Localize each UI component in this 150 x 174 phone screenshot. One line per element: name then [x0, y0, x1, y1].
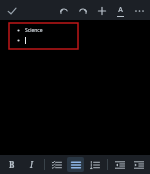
- button[interactable]: Text formatting: [111, 1, 130, 20]
- button[interactable]: Numbered list: [86, 157, 103, 172]
- staticText: A: [118, 5, 123, 15]
- button[interactable]: More options: [130, 1, 149, 20]
- button[interactable]: Redo: [73, 1, 92, 20]
- button[interactable]: Undo: [54, 1, 73, 20]
- button[interactable]: Bold: [3, 157, 21, 172]
- staticText: I: [30, 159, 34, 170]
- staticText: Science: [25, 27, 43, 34]
- button[interactable]: Decrease indent: [111, 157, 128, 172]
- button[interactable]: Done: [3, 2, 20, 19]
- button[interactable]: Increase indent: [130, 157, 147, 172]
- button[interactable]: Add: [92, 1, 111, 20]
- button[interactable]: Bulleted list: [67, 157, 84, 172]
- button[interactable]: Checklist: [48, 157, 65, 172]
- button[interactable]: Italic: [23, 157, 40, 172]
- staticText: B: [9, 159, 15, 170]
